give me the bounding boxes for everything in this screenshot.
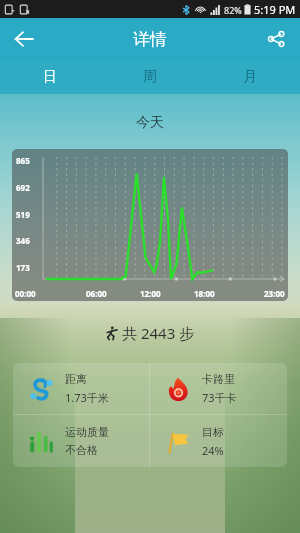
button[interactable]: Share bbox=[258, 21, 294, 57]
staticText: 00:00 bbox=[15, 288, 36, 299]
staticText: 周 bbox=[143, 68, 157, 86]
staticText: 73千卡 bbox=[202, 390, 237, 405]
staticText: 详情 bbox=[133, 29, 167, 50]
staticText: 23:00 bbox=[264, 288, 285, 299]
button[interactable]: 周 bbox=[100, 60, 200, 94]
staticText: 346 bbox=[16, 235, 30, 246]
staticText: 173 bbox=[16, 262, 30, 273]
staticText: 24% bbox=[202, 443, 224, 458]
staticText: 不合格 bbox=[65, 443, 98, 457]
staticText: 共 2443 步 bbox=[122, 323, 195, 343]
staticText: 1.73千米 bbox=[65, 390, 109, 405]
staticText: 82% bbox=[224, 4, 242, 16]
staticText: 运动质量 bbox=[65, 425, 109, 439]
staticText: 865 bbox=[16, 155, 30, 166]
staticText: 目标 bbox=[202, 425, 224, 439]
staticText: 月 bbox=[243, 68, 257, 86]
staticText: 12:00 bbox=[140, 288, 161, 299]
button[interactable]: 运动质量 bbox=[13, 415, 149, 467]
staticText: 距离 bbox=[65, 372, 87, 386]
button[interactable]: Back bbox=[6, 21, 42, 57]
staticText: 5:19 PM bbox=[254, 2, 296, 17]
button[interactable]: 卡路里 bbox=[150, 363, 287, 414]
staticText: 今天 bbox=[0, 114, 300, 132]
staticText: 18:00 bbox=[194, 288, 215, 299]
staticText: 06:00 bbox=[86, 288, 107, 299]
button[interactable]: 日 bbox=[0, 60, 100, 94]
staticText: 692 bbox=[16, 182, 30, 193]
staticText: 519 bbox=[16, 209, 30, 220]
staticText: 日 bbox=[43, 68, 57, 86]
button[interactable]: 距离 bbox=[13, 363, 149, 414]
staticText: 卡路里 bbox=[202, 372, 235, 386]
button[interactable]: 月 bbox=[200, 60, 300, 94]
button[interactable]: 目标 bbox=[150, 415, 287, 467]
